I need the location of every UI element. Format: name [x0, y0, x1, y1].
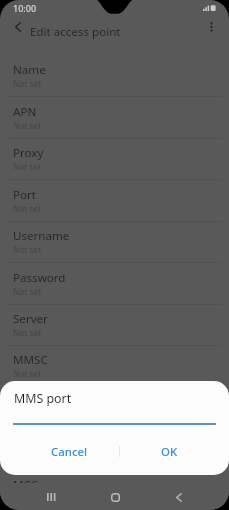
- button[interactable]: MMSC: [0, 345, 229, 386]
- button[interactable]: APN: [0, 97, 229, 138]
- staticText: MMSC: [13, 352, 48, 368]
- staticText: MMS proxy: [13, 394, 74, 410]
- button[interactable]: MCC: [0, 470, 229, 510]
- staticText: 10:00: [13, 2, 37, 14]
- button[interactable]: Cancel: [19, 441, 120, 463]
- button[interactable]: Password: [0, 263, 229, 304]
- button[interactable]: Port: [0, 180, 229, 221]
- staticText: Not set: [13, 203, 42, 214]
- staticText: Username: [13, 228, 70, 244]
- staticText: Password: [13, 270, 66, 286]
- button[interactable]: Proxy: [0, 138, 229, 179]
- staticText: Proxy: [13, 145, 44, 161]
- staticText: APN: [13, 104, 37, 120]
- staticText: Not set: [13, 286, 42, 297]
- button[interactable]: MMS proxy: [0, 387, 229, 428]
- button[interactable]: OK: [120, 441, 218, 463]
- button[interactable]: Back: [160, 485, 198, 509]
- staticText: OK: [161, 444, 178, 460]
- staticText: MMS port: [13, 435, 67, 451]
- staticText: Edit access point: [30, 24, 121, 40]
- staticText: Server: [13, 311, 48, 327]
- staticText: Not set: [13, 368, 42, 379]
- button[interactable]: Recent apps: [32, 485, 70, 509]
- button[interactable]: Home: [96, 485, 134, 509]
- button[interactable]: MMS port: [0, 428, 229, 469]
- button[interactable]: Name: [0, 55, 229, 96]
- staticText: Port: [13, 187, 37, 203]
- button[interactable]: More options: [200, 17, 222, 36]
- staticText: Not set: [13, 161, 42, 172]
- staticText: Name: [13, 62, 46, 78]
- button[interactable]: Username: [0, 221, 229, 262]
- staticText: Not set: [13, 120, 42, 131]
- staticText: MMS port: [14, 390, 72, 407]
- staticText: Not set: [13, 78, 42, 89]
- staticText: Not set: [13, 327, 42, 338]
- button[interactable]: Navigate up: [7, 17, 28, 36]
- button[interactable]: Server: [0, 304, 229, 345]
- staticText: Cancel: [51, 444, 88, 460]
- staticText: MCC: [13, 477, 38, 493]
- staticText: Not set: [13, 244, 42, 255]
